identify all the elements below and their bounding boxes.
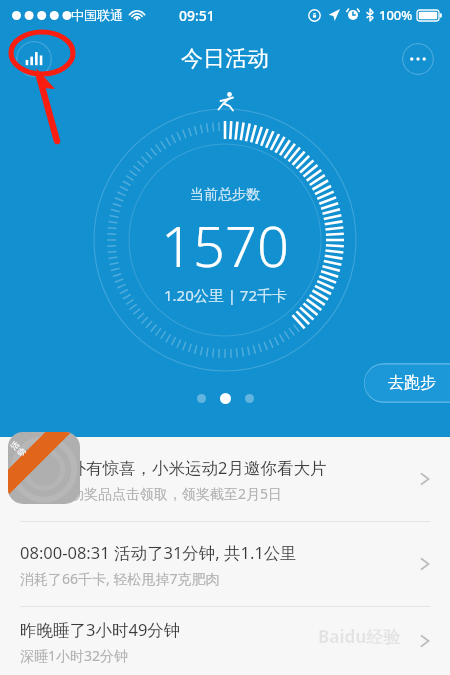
staticText: 中国联通 [71,7,123,23]
staticText: 消耗了66千卡, 轻松甩掉7克肥肉 [20,569,220,588]
staticText: 新春格外有惊喜，小米运动2月邀你看大片 [20,456,327,479]
staticText: 活 动 [8,439,28,458]
staticText: 09:51 [179,6,215,25]
staticText: 深睡1小时32分钟 [20,646,129,665]
staticText: Baidu经验 [318,625,401,648]
button[interactable]: 昨晚睡了3小时49分钟 [0,607,450,675]
staticText: 08:00-08:31 活动了31分钟, 共1.1公里 [20,541,297,564]
button[interactable]: Statistics [16,41,52,77]
button[interactable]: 去跑步 [364,363,450,403]
staticText: 1.20公里 | 72千卡 [164,285,287,305]
staticText: 今日活动 [181,45,269,73]
staticText: 1月份活动奖品点击领取，领奖截至2月5日 [20,484,283,503]
button[interactable]: More options [402,43,434,75]
staticText: 100% [379,6,413,24]
button[interactable]: 新春格外有惊喜，小米运动2月邀你看大片 [0,437,450,521]
button[interactable]: 08:00-08:31 活动了31分钟, 共1.1公里 [0,522,450,606]
staticText: 去跑步 [388,373,436,393]
staticText: 昨晚睡了3小时49分钟 [20,618,181,641]
staticText: 当前总步数 [190,186,260,204]
staticText: 1570 [161,207,289,283]
